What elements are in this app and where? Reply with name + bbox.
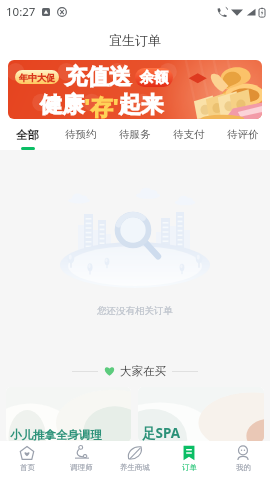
staticText: 足SPA [142,424,180,442]
staticText: 待服务 [119,128,151,141]
staticText: 首页 [20,463,35,472]
button[interactable]: 待服务 [108,124,162,150]
staticText: 养生商城 [120,463,150,472]
staticText: 起来 [119,91,163,119]
staticText: 待支付 [173,128,205,141]
button[interactable]: 待支付 [162,124,216,150]
button[interactable]: 全部 [0,124,54,150]
button[interactable]: 小儿推拿全身调理 [6,387,131,442]
staticText: 宜生订单 [109,32,161,48]
button[interactable]: 足SPA [138,387,264,442]
staticText: 调理师 [70,463,93,472]
staticText: '存' [84,91,119,119]
staticText: 订单 [182,463,197,472]
staticText: 年中大促 [19,72,55,83]
staticText: 待预约 [65,128,97,141]
button[interactable]: 年中大促 [8,60,262,119]
button[interactable]: 待评价 [216,124,270,150]
staticText: 健康 [40,91,84,119]
button[interactable]: 待预约 [54,124,108,150]
button[interactable]: Wellness store [108,441,162,479]
staticText: 我的 [236,463,251,472]
button[interactable]: Profile [216,441,270,479]
staticText: 10:27 [6,4,36,20]
staticText: 充值送 [65,63,131,91]
button[interactable]: Therapist [54,441,108,479]
staticText: 余额 [140,69,168,87]
button[interactable]: Orders [162,441,216,479]
staticText: 全部 [16,128,39,142]
button[interactable]: Home [0,441,54,479]
staticText: 小儿推拿全身调理 [10,428,102,442]
staticText: 您还没有相关订单 [97,305,173,317]
staticText: 待评价 [227,128,259,141]
staticText: 大家在买 [120,364,166,378]
